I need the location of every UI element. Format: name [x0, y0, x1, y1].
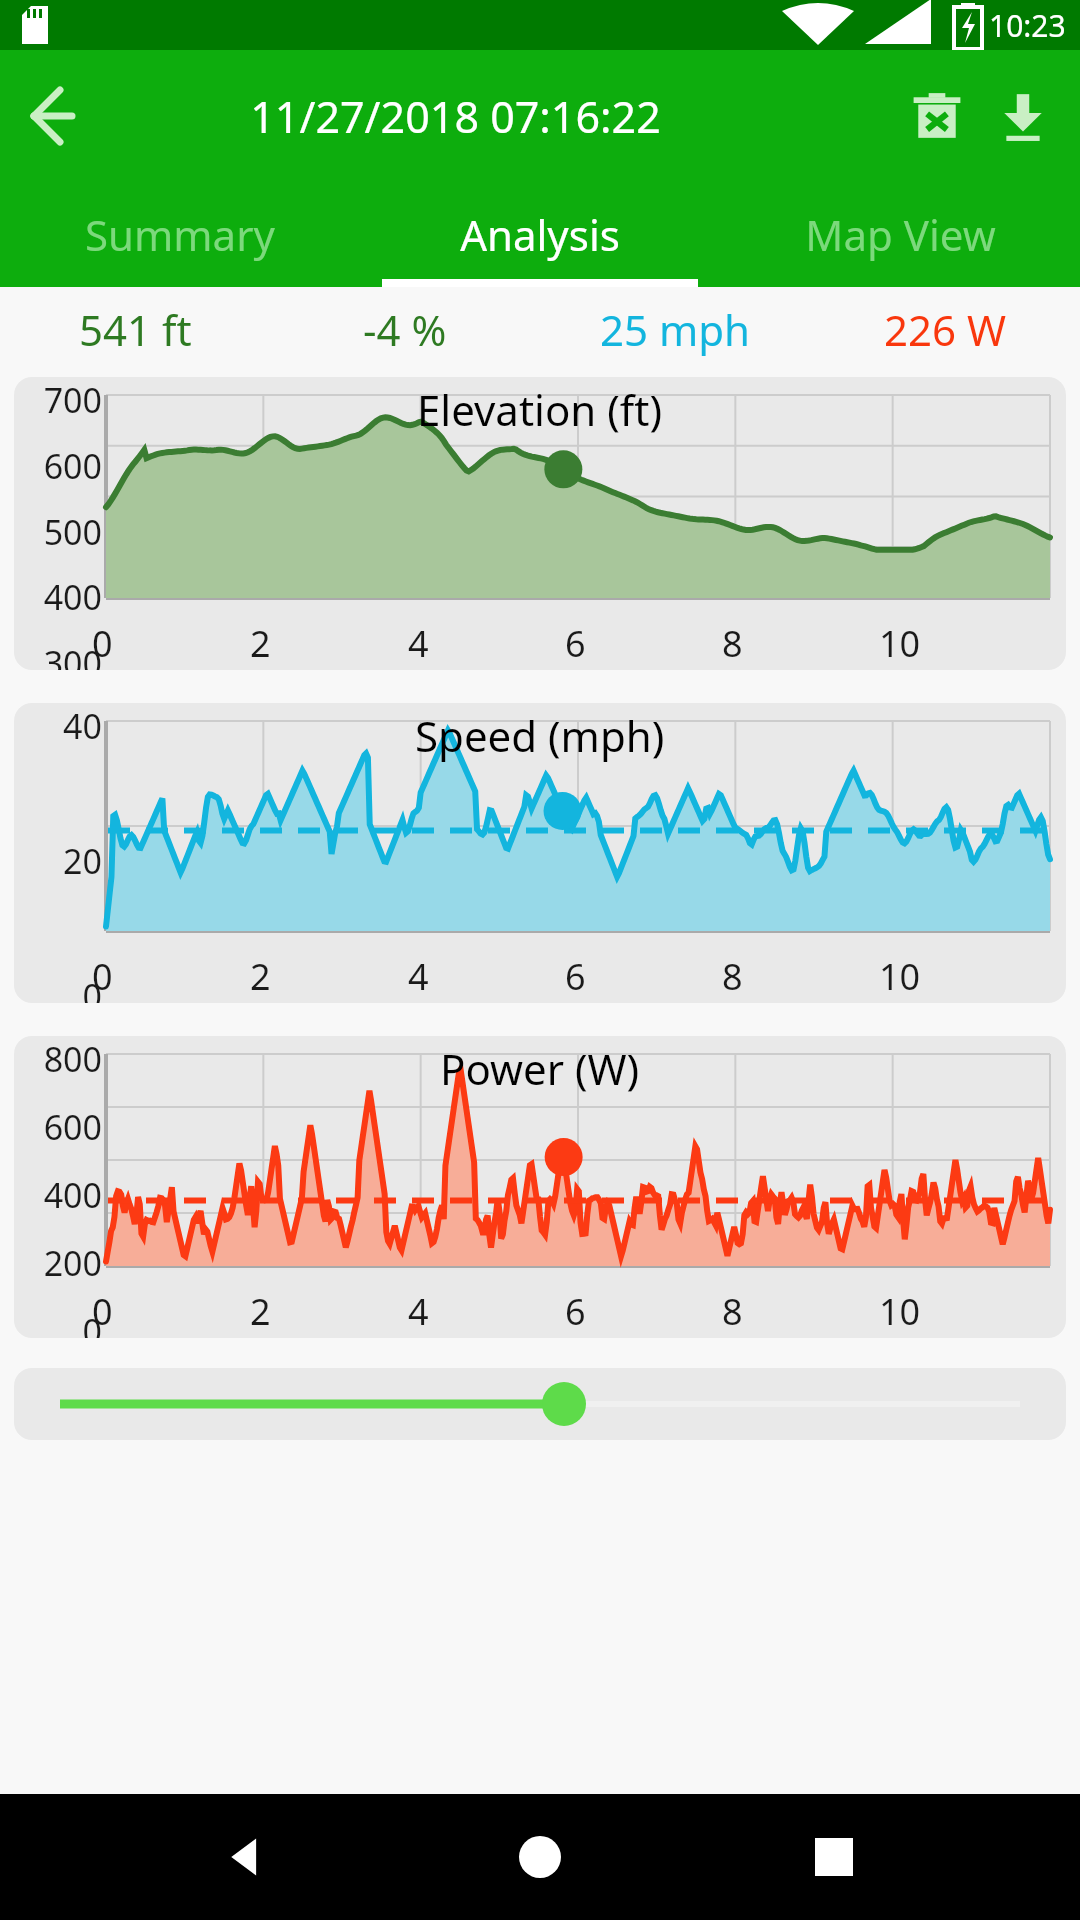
staticText: 10: [879, 619, 921, 668]
staticText: 10: [879, 952, 921, 1001]
staticText: 0: [18, 973, 102, 1003]
button[interactable]: Download: [980, 73, 1066, 159]
staticText: 4: [408, 619, 429, 668]
button[interactable]: 800: [14, 1036, 1066, 1338]
staticText: 8: [722, 619, 743, 668]
staticText: Map View: [805, 206, 996, 263]
staticText: 6: [565, 619, 586, 668]
staticText: 10:23: [989, 5, 1066, 46]
staticText: 200: [18, 1240, 102, 1286]
staticText: Analysis: [460, 206, 620, 263]
staticText: 8: [722, 1287, 743, 1336]
button[interactable]: [14, 1368, 1066, 1440]
staticText: 300: [18, 640, 102, 670]
button[interactable]: Delete: [894, 73, 980, 159]
button[interactable]: Home: [492, 1809, 588, 1905]
staticText: -4 %: [363, 301, 447, 358]
staticText: 0: [92, 619, 113, 668]
button[interactable]: Recents: [786, 1809, 882, 1905]
button[interactable]: 700: [14, 377, 1066, 670]
staticText: 40: [18, 703, 102, 749]
staticText: 700: [18, 377, 102, 423]
button[interactable]: Analysis: [360, 182, 720, 287]
staticText: 6: [565, 952, 586, 1001]
staticText: 541 ft: [79, 301, 192, 358]
button[interactable]: Map View: [720, 182, 1080, 287]
staticText: 11/27/2018 07:16:22: [250, 87, 661, 146]
staticText: 600: [18, 443, 102, 489]
staticText: 800: [18, 1036, 102, 1082]
staticText: 20: [18, 838, 102, 884]
staticText: 8: [722, 952, 743, 1001]
staticText: 400: [18, 574, 102, 620]
staticText: 500: [18, 509, 102, 555]
button[interactable]: 40: [14, 703, 1066, 1003]
staticText: 0: [18, 1308, 102, 1338]
staticText: 4: [408, 952, 429, 1001]
staticText: 226 W: [884, 301, 1007, 358]
staticText: Elevation (ft): [417, 381, 663, 438]
staticText: 25 mph: [600, 301, 751, 358]
staticText: 2: [250, 952, 271, 1001]
staticText: 2: [250, 1287, 271, 1336]
staticText: 0: [92, 1287, 113, 1336]
button[interactable]: Summary: [0, 182, 360, 287]
button[interactable]: Back: [198, 1809, 294, 1905]
staticText: 4: [408, 1287, 429, 1336]
staticText: Speed (mph): [415, 707, 665, 764]
button[interactable]: Back: [16, 80, 88, 152]
staticText: 6: [565, 1287, 586, 1336]
staticText: Summary: [85, 206, 275, 263]
staticText: Power (W): [440, 1040, 640, 1097]
staticText: 400: [18, 1172, 102, 1218]
staticText: 10: [879, 1287, 921, 1336]
staticText: 600: [18, 1104, 102, 1150]
staticText: 0: [92, 952, 113, 1001]
staticText: 2: [250, 619, 271, 668]
